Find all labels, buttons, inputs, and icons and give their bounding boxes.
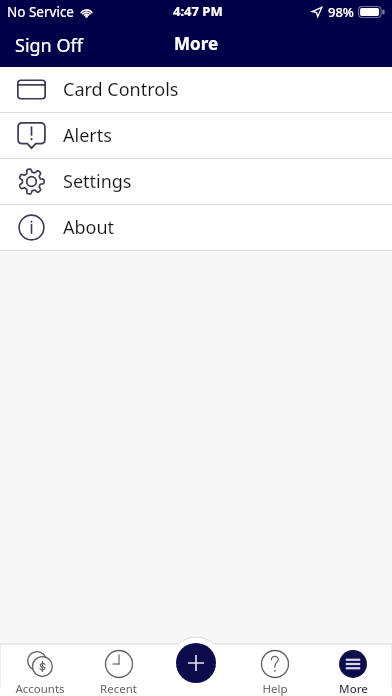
staticText: 4:47 PM <box>173 2 223 20</box>
staticText: Accounts <box>15 681 65 696</box>
button[interactable]: Accounts <box>0 644 79 696</box>
staticText: Alerts <box>63 123 112 148</box>
staticText: Settings <box>63 169 132 194</box>
button[interactable]: Help <box>236 644 314 696</box>
staticText: Card Controls <box>63 77 179 102</box>
staticText: No Service <box>7 3 74 21</box>
button[interactable]: Settings <box>0 159 392 205</box>
staticText: More <box>339 681 368 696</box>
staticText: Sign Off <box>15 33 83 58</box>
staticText: Recent <box>100 681 137 696</box>
staticText: Help <box>262 681 288 696</box>
button[interactable]: More <box>314 644 392 696</box>
button[interactable]: About <box>0 205 392 251</box>
button[interactable]: Add <box>176 643 216 683</box>
button[interactable]: Sign Off <box>15 33 83 58</box>
staticText: About <box>63 215 115 240</box>
button[interactable]: Card Controls <box>0 67 392 113</box>
staticText: More <box>174 32 219 55</box>
button[interactable]: Alerts <box>0 113 392 159</box>
button[interactable]: Recent <box>79 644 158 696</box>
staticText: 98% <box>328 3 354 21</box>
